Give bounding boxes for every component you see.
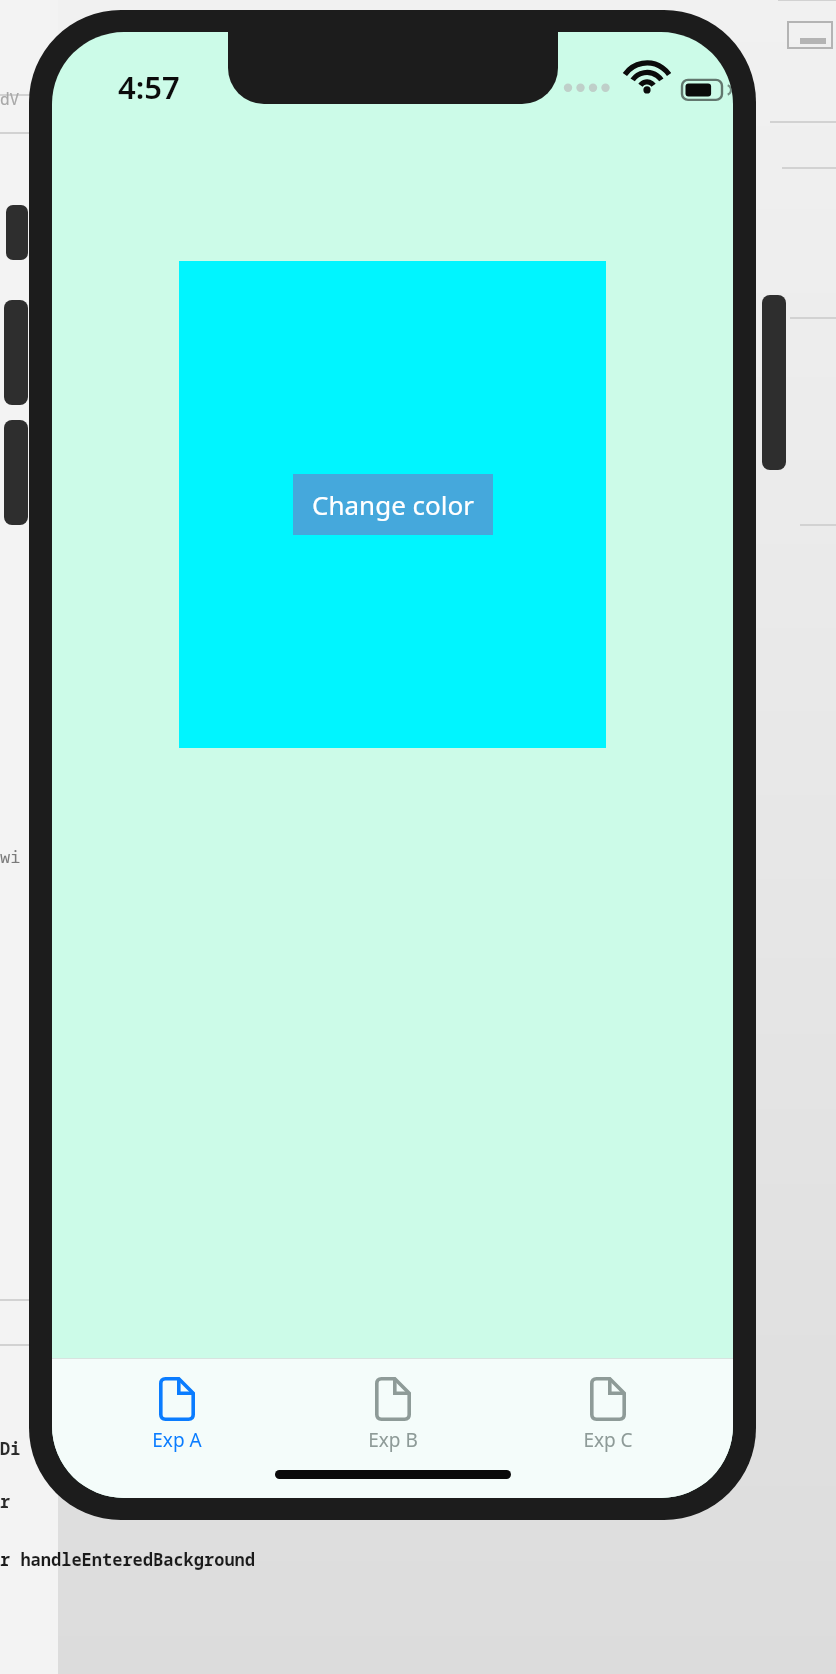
staticText: r — [0, 1490, 11, 1513]
button[interactable]: Exp C — [518, 1373, 698, 1457]
other: Exp C — [590, 1377, 626, 1421]
staticText: dV — [0, 88, 20, 110]
button[interactable]: Change color — [293, 474, 493, 535]
staticText: Exp C — [583, 1427, 633, 1453]
staticText: Change color — [312, 487, 474, 522]
staticText: Exp B — [368, 1427, 418, 1453]
staticText: Di — [0, 1437, 21, 1460]
button[interactable]: Exp A — [87, 1373, 267, 1457]
other: Exp A — [159, 1377, 195, 1421]
button[interactable]: Exp B — [303, 1373, 483, 1457]
staticText: Exp A — [152, 1427, 202, 1453]
staticText: wi — [0, 845, 21, 868]
other: Exp B — [375, 1377, 411, 1421]
staticText: r handleEnteredBackground — [0, 1548, 255, 1571]
staticText: 4:57 — [118, 66, 180, 108]
